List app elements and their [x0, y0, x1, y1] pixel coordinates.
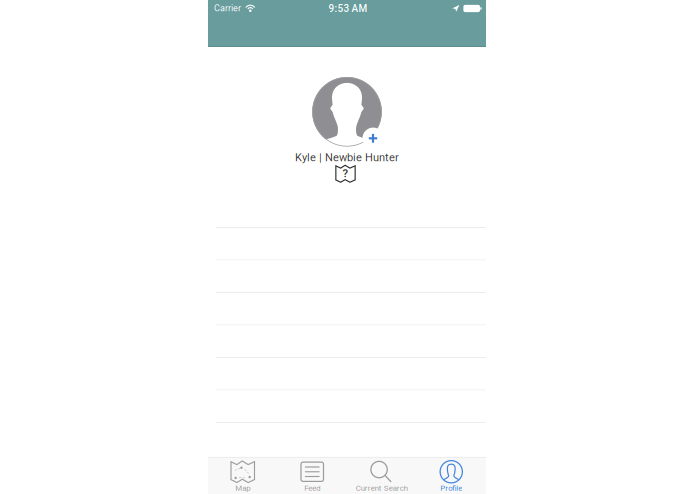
button[interactable] [216, 390, 486, 423]
button[interactable] [216, 325, 486, 358]
button[interactable]: Profile [416, 458, 486, 494]
button[interactable] [216, 260, 486, 293]
staticText: Profile [440, 483, 462, 493]
button[interactable]: Map [208, 458, 277, 494]
staticText: Feed [304, 483, 320, 493]
staticText: Map [235, 483, 250, 493]
staticText: ? [342, 167, 348, 180]
staticText: Carrier [214, 3, 241, 13]
button[interactable]: Change profile photo [312, 77, 382, 147]
staticText: 9:53 AM [328, 3, 367, 14]
button[interactable]: Current Search [347, 458, 416, 494]
button[interactable] [216, 195, 486, 228]
staticText: Kyle | Newbie Hunter [295, 151, 399, 164]
staticText: Current Search [356, 483, 408, 493]
button[interactable]: Feed [277, 458, 347, 494]
